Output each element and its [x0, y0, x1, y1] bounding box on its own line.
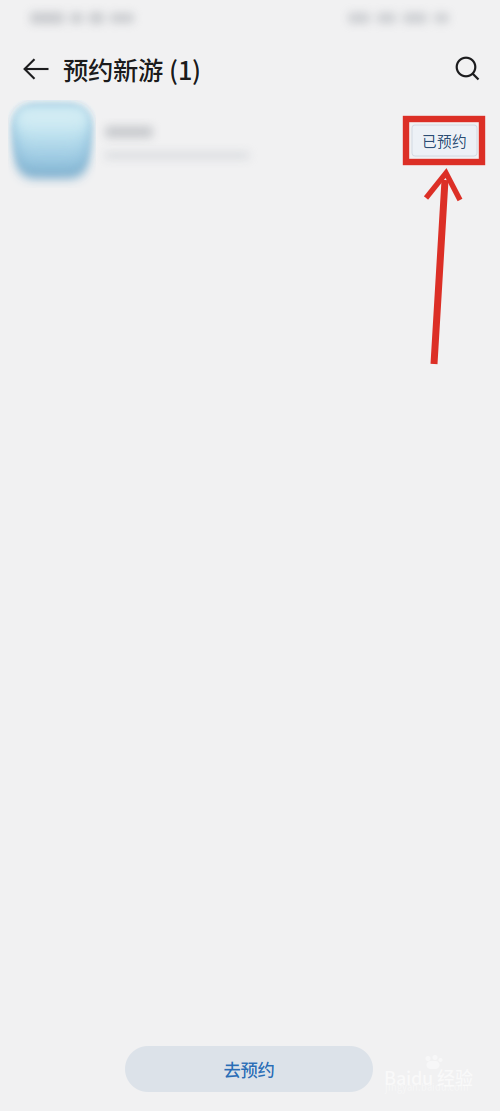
button[interactable]: Search — [441, 42, 495, 96]
staticText: 已预约 — [422, 130, 467, 151]
button[interactable]: Back — [10, 42, 62, 96]
staticText: 去预约 — [223, 1056, 274, 1082]
staticText: 预约新游 (1) — [63, 51, 201, 87]
button[interactable]: 去预约 — [125, 1046, 373, 1092]
button[interactable]: 已预约 — [412, 125, 477, 156]
